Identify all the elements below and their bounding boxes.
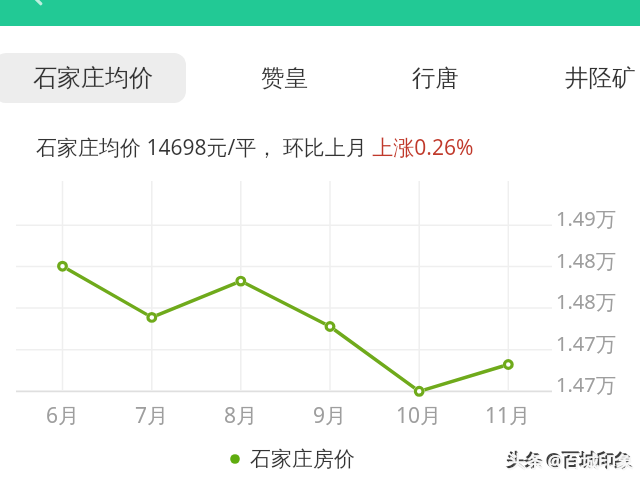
staticText: 7月: [135, 401, 169, 430]
button[interactable]: 井陉矿: [540, 53, 640, 103]
staticText: 11月: [485, 401, 531, 430]
staticText: 行唐: [412, 63, 459, 93]
staticText: 头条 @百城印象: [508, 449, 634, 473]
staticText: 井陉矿: [565, 63, 636, 93]
staticText: 6月: [46, 401, 80, 430]
staticText: 8月: [224, 401, 258, 430]
staticText: 9月: [313, 401, 347, 430]
staticText: 1.47万: [556, 371, 616, 398]
staticText: 赞皇: [261, 63, 308, 93]
staticText: 10月: [396, 401, 442, 430]
button[interactable]: 行唐: [375, 53, 495, 103]
staticText: 1.49万: [556, 205, 616, 232]
staticText: 头条 @百城印象: [507, 448, 633, 472]
button[interactable]: 赞皇: [224, 53, 344, 103]
button[interactable]: 石家庄房价: [227, 446, 355, 472]
staticText: 1.48万: [556, 288, 616, 315]
staticText: 1.47万: [556, 330, 616, 357]
staticText: 1.48万: [556, 247, 616, 274]
other: Search: [14, 0, 48, 3]
button[interactable]: 石家庄均价: [0, 53, 186, 103]
staticText: 石家庄均价 14698元/平， 环比上月 上涨0.26%: [36, 133, 474, 162]
button[interactable]: Search: [0, 0, 640, 26]
staticText: 石家庄房价: [250, 446, 355, 472]
staticText: 头条 @百城印象: [506, 447, 632, 471]
staticText: 石家庄均价: [33, 63, 153, 93]
